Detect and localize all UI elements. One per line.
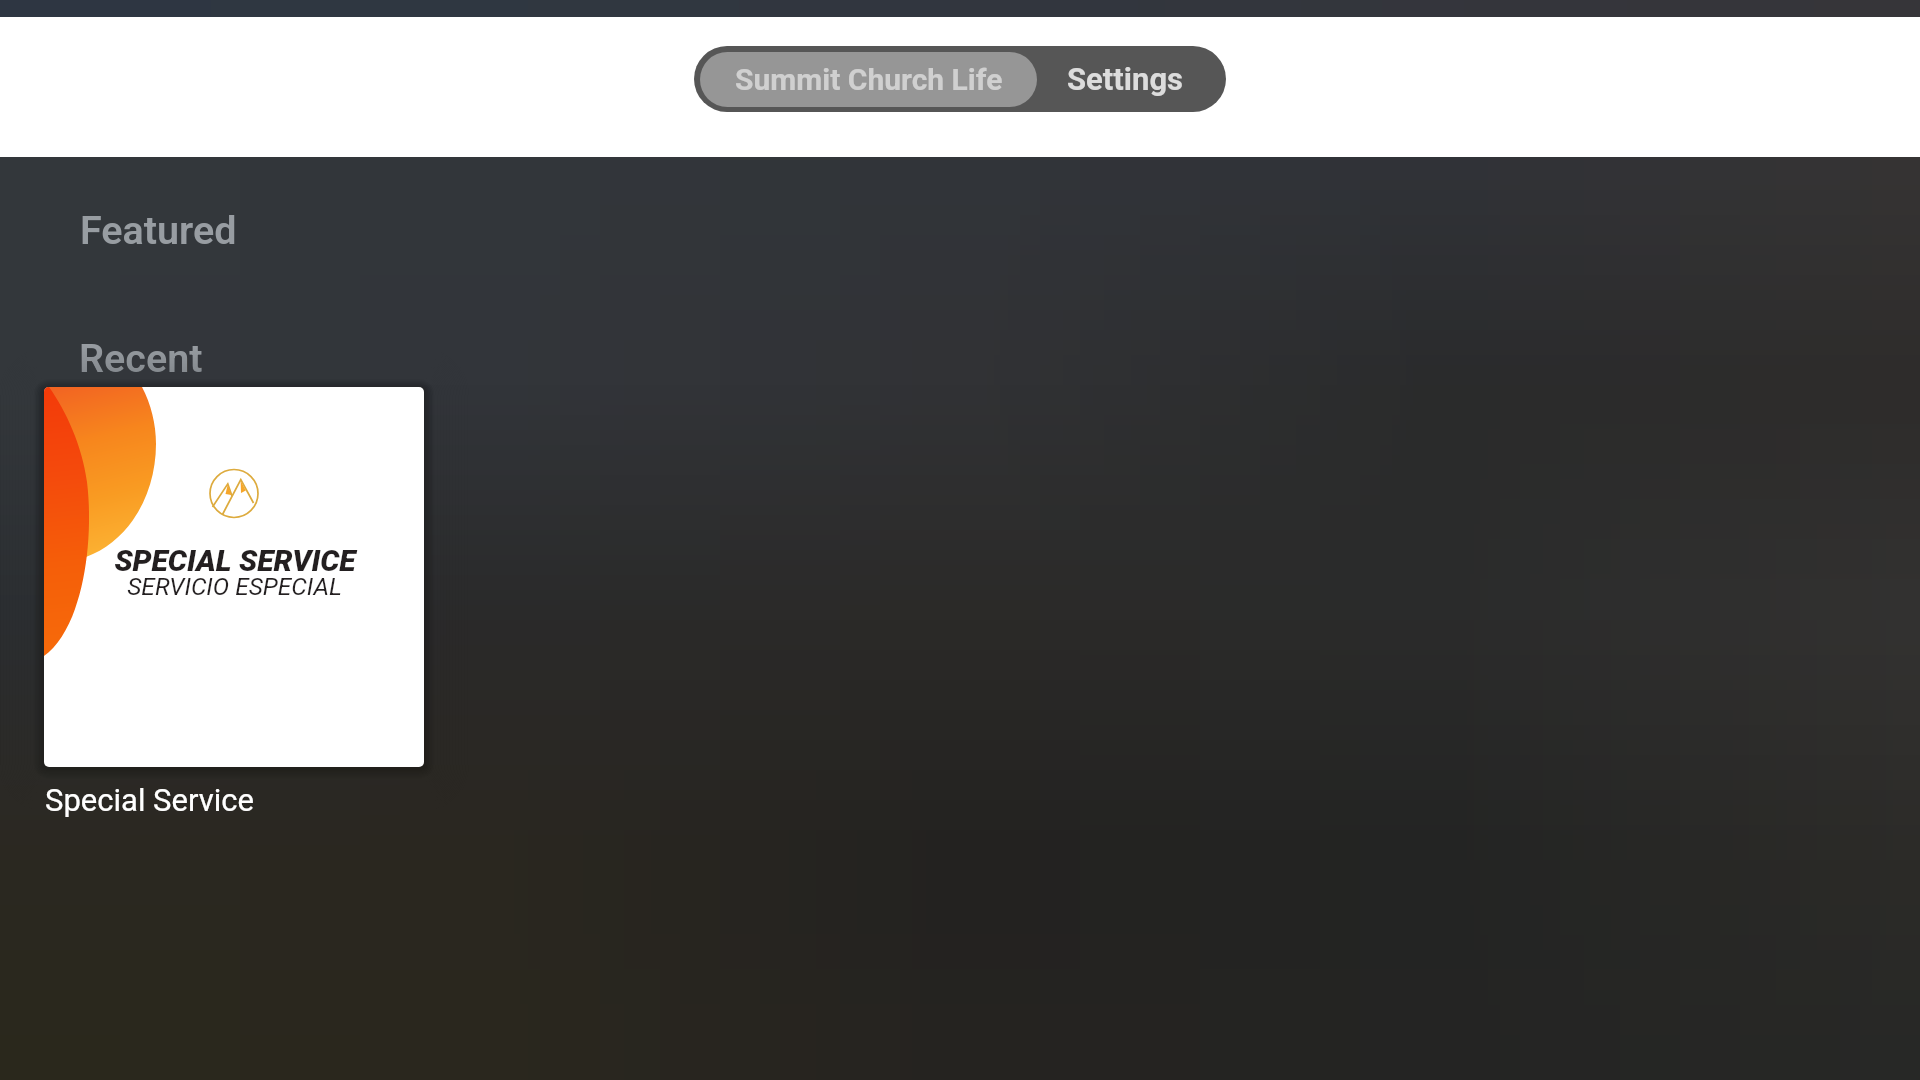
staticText: Summit Church Life [735, 62, 1003, 97]
staticText: SERVICIO ESPECIAL [127, 572, 342, 601]
staticText: Special Service [45, 782, 254, 818]
staticText: Featured [80, 207, 237, 253]
staticText: SPECIAL SERVICE [114, 543, 356, 578]
button[interactable]: Special Service [44, 387, 424, 767]
button[interactable]: Summit Church Life [700, 52, 1037, 107]
button[interactable]: Settings [1037, 46, 1226, 112]
staticText: Recent [79, 335, 203, 381]
staticText: Settings [1067, 61, 1184, 97]
